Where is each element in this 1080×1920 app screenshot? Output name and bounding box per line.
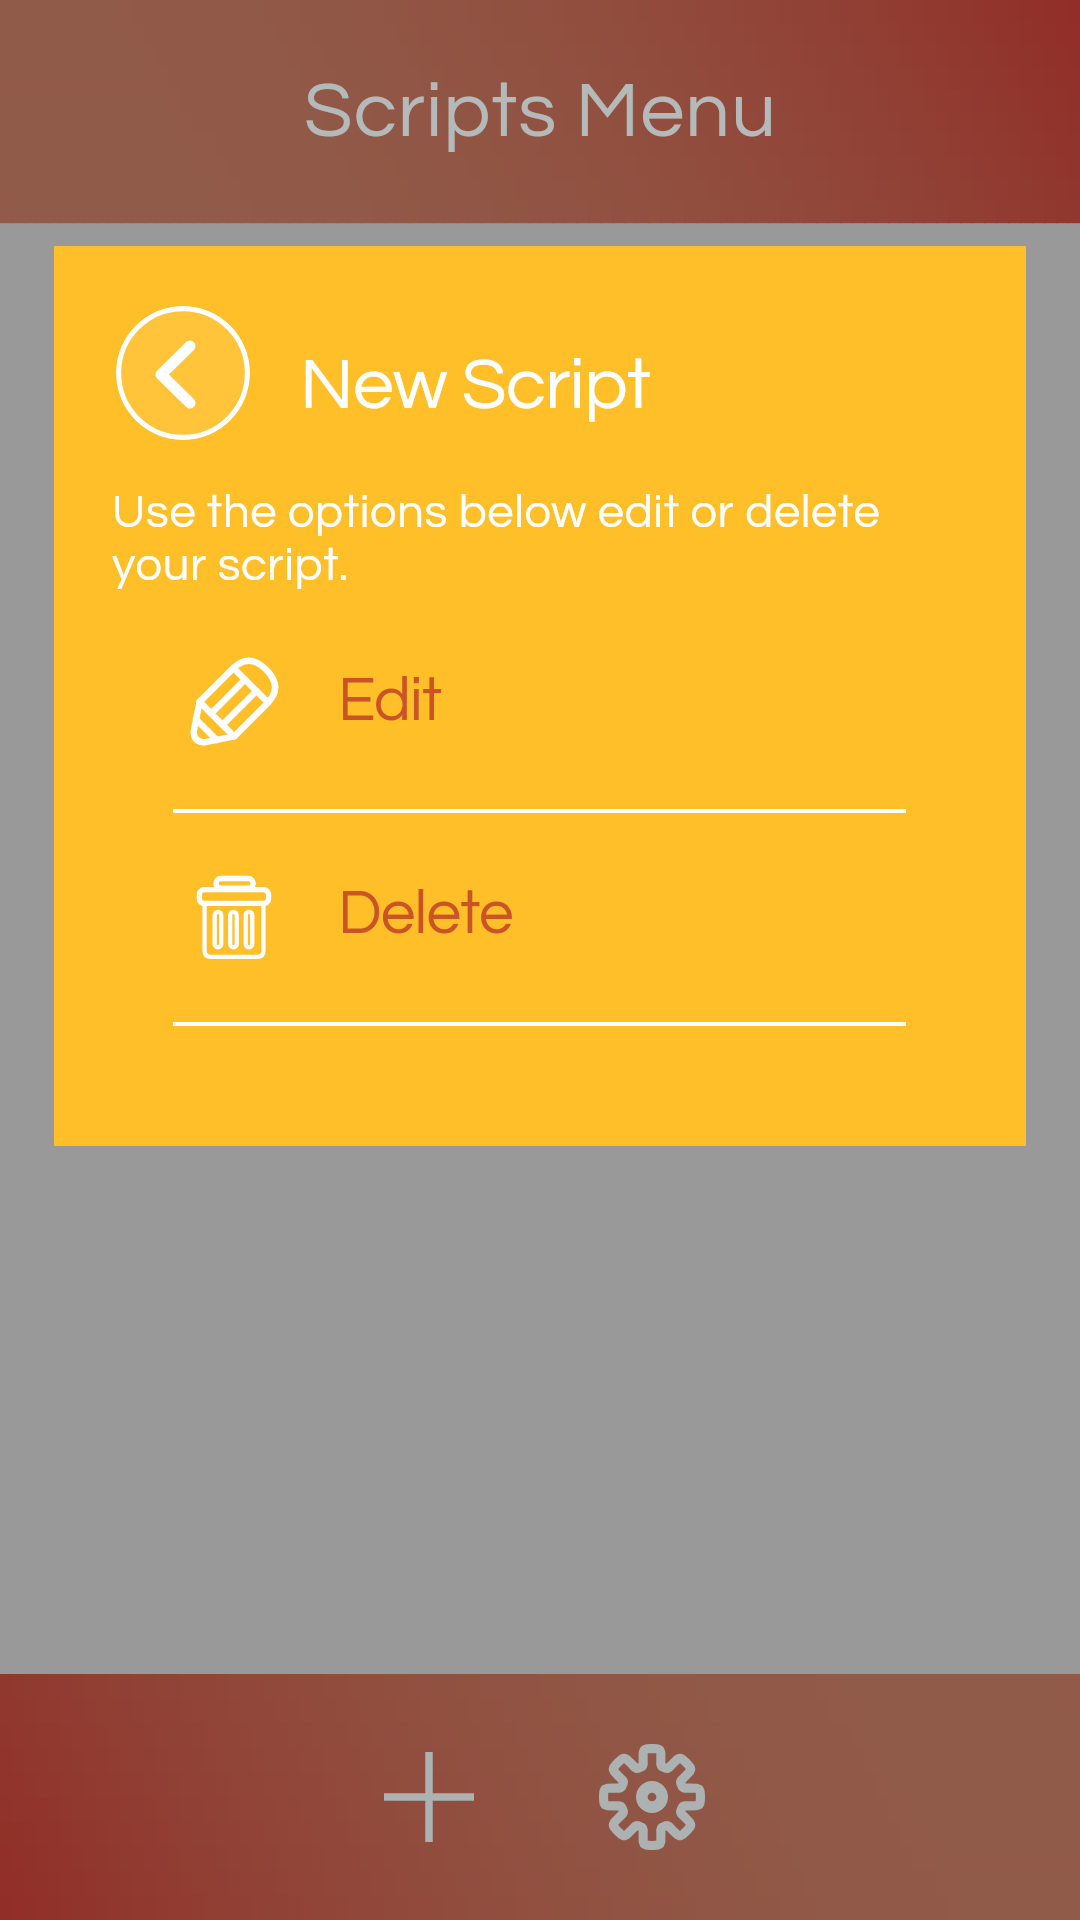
- button[interactable]: Edit: [54, 597, 1026, 810]
- staticText: Use the options below edit or delete you…: [112, 488, 922, 589]
- button[interactable]: Add: [359, 1727, 499, 1867]
- staticText: Scripts Menu: [304, 71, 777, 152]
- button[interactable]: Settings: [582, 1727, 722, 1867]
- staticText: Edit: [338, 669, 442, 733]
- staticText: Delete: [338, 882, 513, 946]
- button[interactable]: Delete: [54, 810, 1026, 1023]
- button[interactable]: Back: [116, 306, 250, 440]
- staticText: New Script: [300, 348, 651, 423]
